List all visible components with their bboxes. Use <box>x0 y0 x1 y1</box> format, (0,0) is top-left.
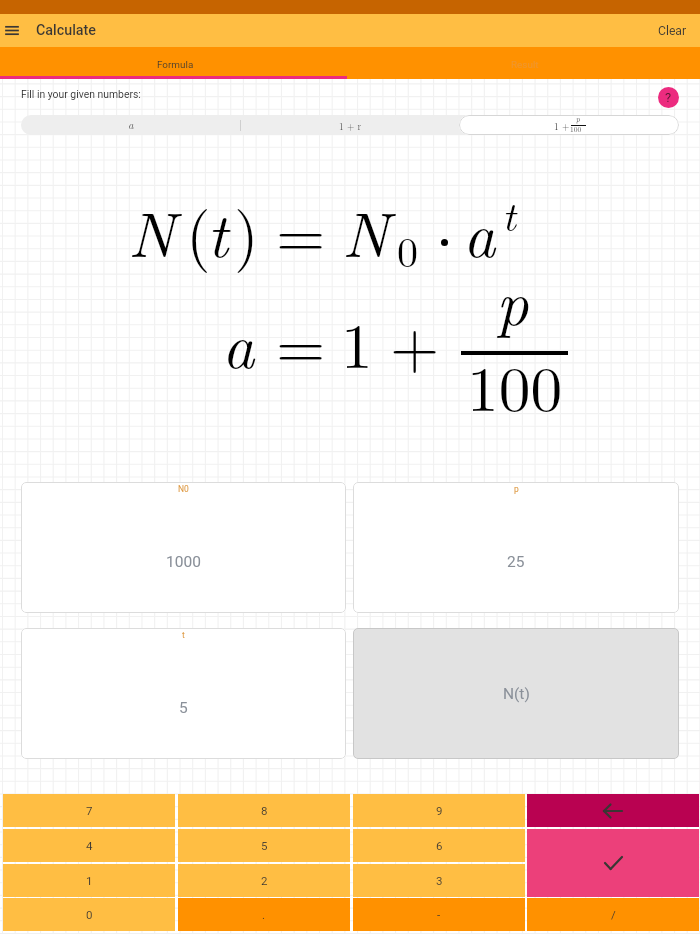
staticText: 3 <box>436 874 443 887</box>
button[interactable]: 8 <box>178 794 350 827</box>
staticText: 9 <box>436 804 443 817</box>
staticText: Formula <box>157 59 194 71</box>
staticText: N <box>342 186 390 276</box>
button[interactable]: a <box>21 115 241 135</box>
staticText: 100 <box>570 124 582 135</box>
button[interactable]: 9 <box>353 794 525 827</box>
staticText: ) <box>234 186 259 276</box>
button[interactable]: 0 <box>3 898 175 931</box>
button[interactable]: p <box>353 482 679 613</box>
staticText: t <box>182 630 185 640</box>
staticText: p <box>576 115 580 125</box>
button[interactable]: 2 <box>178 864 350 897</box>
button[interactable]: 5 <box>178 829 350 862</box>
staticText: 5 <box>261 839 268 852</box>
button[interactable]: Confirm <box>527 829 699 897</box>
button[interactable]: 1 + <box>459 115 679 135</box>
staticText: 1 + r <box>339 119 362 132</box>
staticText: Clear <box>658 24 687 38</box>
staticText: 8 <box>261 804 268 817</box>
button[interactable]: 6 <box>353 829 525 862</box>
staticText: 1000 <box>166 553 201 571</box>
button[interactable]: 4 <box>3 829 175 862</box>
staticText: Fill in your given numbers: <box>21 88 141 100</box>
staticText: p <box>496 254 529 344</box>
button[interactable]: Backspace <box>527 794 699 827</box>
staticText: a <box>128 117 134 133</box>
staticText: Calculate <box>36 22 97 39</box>
staticText: 1 + <box>554 119 570 132</box>
button[interactable]: Open navigation menu <box>0 14 36 47</box>
button[interactable]: Clear <box>645 14 700 47</box>
staticText: 5 <box>179 699 188 717</box>
staticText: N(t) <box>503 685 530 703</box>
staticText: 25 <box>507 553 525 571</box>
staticText: 6 <box>436 839 443 852</box>
staticText: t <box>207 186 229 276</box>
staticText: / <box>611 908 616 921</box>
staticText: 0 <box>86 908 93 921</box>
staticText: + <box>390 297 440 387</box>
button[interactable]: 1 <box>3 864 175 897</box>
staticText: = <box>276 186 326 276</box>
staticText: = <box>276 297 326 387</box>
staticText: ? <box>665 90 672 105</box>
staticText: 100 <box>467 340 563 430</box>
staticText: . <box>262 908 266 921</box>
staticText: 7 <box>86 804 93 817</box>
staticText: 1 <box>86 874 93 887</box>
staticText: 4 <box>86 839 93 852</box>
button[interactable]: 7 <box>3 794 175 827</box>
staticText: t <box>502 184 516 243</box>
staticText: N <box>128 186 176 276</box>
button[interactable]: N(t) <box>353 628 679 759</box>
staticText: p <box>514 484 519 494</box>
button[interactable]: / <box>527 898 699 931</box>
button[interactable]: t <box>21 628 346 759</box>
staticText: Result <box>511 59 539 71</box>
button[interactable]: 1 + r <box>241 115 460 135</box>
button[interactable]: Formula <box>0 47 350 79</box>
staticText: - <box>437 908 441 921</box>
staticText: a <box>222 297 255 387</box>
button[interactable]: 3 <box>353 864 525 897</box>
staticText: N0 <box>178 484 189 494</box>
staticText: ( <box>186 186 211 276</box>
button[interactable]: Help <box>658 87 679 108</box>
staticText: 0 <box>397 220 419 280</box>
staticText: 1 <box>341 297 373 387</box>
staticText: 2 <box>261 874 268 887</box>
button[interactable] <box>460 115 679 135</box>
button[interactable]: N0 <box>21 482 346 613</box>
staticText: a <box>463 186 496 276</box>
